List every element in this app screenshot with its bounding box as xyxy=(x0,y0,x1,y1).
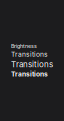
staticText: Transitions xyxy=(11,70,48,78)
staticText: Brightness xyxy=(11,43,37,49)
staticText: Transitions xyxy=(11,50,48,58)
staticText: Transitions xyxy=(11,59,53,69)
